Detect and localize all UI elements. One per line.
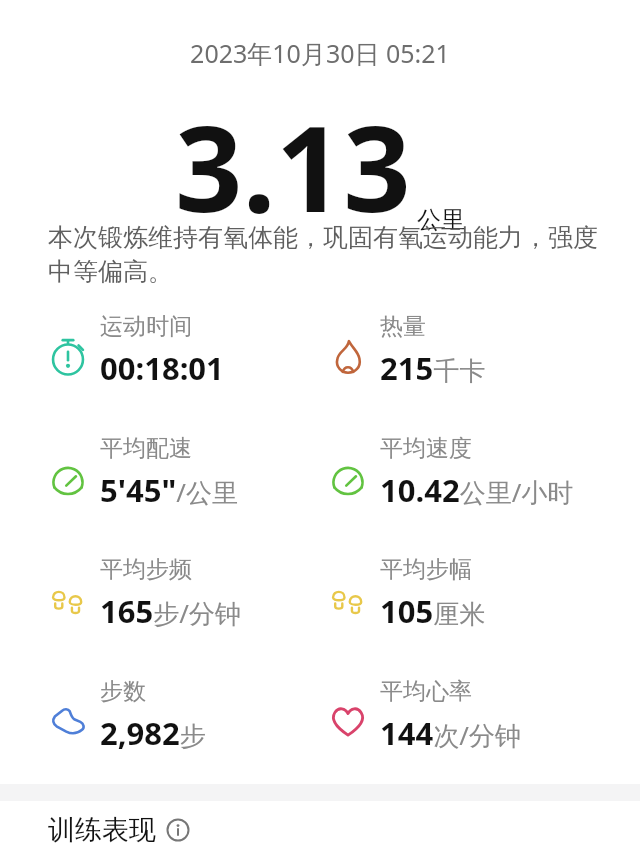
staticText: 2023年10月30日 05:21 — [190, 36, 450, 70]
staticText: 3.13 — [175, 86, 411, 247]
staticText: 144次/分钟 — [380, 712, 521, 754]
staticText: 步数 — [100, 677, 146, 706]
staticText: 公里 — [417, 205, 465, 235]
staticText: 165步/分钟 — [100, 590, 241, 632]
button[interactable]: 平均速度 — [326, 432, 640, 532]
button[interactable]: 训练表现 — [48, 813, 640, 847]
button[interactable]: 步数 — [46, 675, 320, 775]
button[interactable]: 平均步幅 — [326, 553, 640, 653]
button[interactable]: 运动时间 — [46, 310, 320, 410]
button[interactable]: Info — [166, 818, 190, 842]
staticText: 训练表现 — [48, 813, 156, 847]
button[interactable]: 热量 — [326, 310, 640, 410]
staticText: 105厘米 — [380, 590, 486, 632]
staticText: 平均步幅 — [380, 555, 472, 584]
button[interactable]: 平均心率 — [326, 675, 640, 775]
staticText: 5'45"/公里 — [100, 469, 238, 511]
staticText: 10.42公里/小时 — [380, 469, 574, 511]
staticText: 热量 — [380, 312, 426, 341]
staticText: 平均速度 — [380, 434, 472, 463]
staticText: 00:18:01 — [100, 347, 224, 389]
button[interactable]: 平均步频 — [46, 553, 320, 653]
staticText: 平均配速 — [100, 434, 192, 463]
staticText: 215千卡 — [380, 347, 486, 389]
staticText: 2,982步 — [100, 712, 206, 754]
staticText: 本次锻炼维持有氧体能，巩固有氧运动能力，强度中等偏高。 — [48, 222, 600, 288]
staticText: 平均心率 — [380, 677, 472, 706]
staticText: 运动时间 — [100, 312, 192, 341]
button[interactable]: 平均配速 — [46, 432, 320, 532]
staticText: 平均步频 — [100, 555, 192, 584]
